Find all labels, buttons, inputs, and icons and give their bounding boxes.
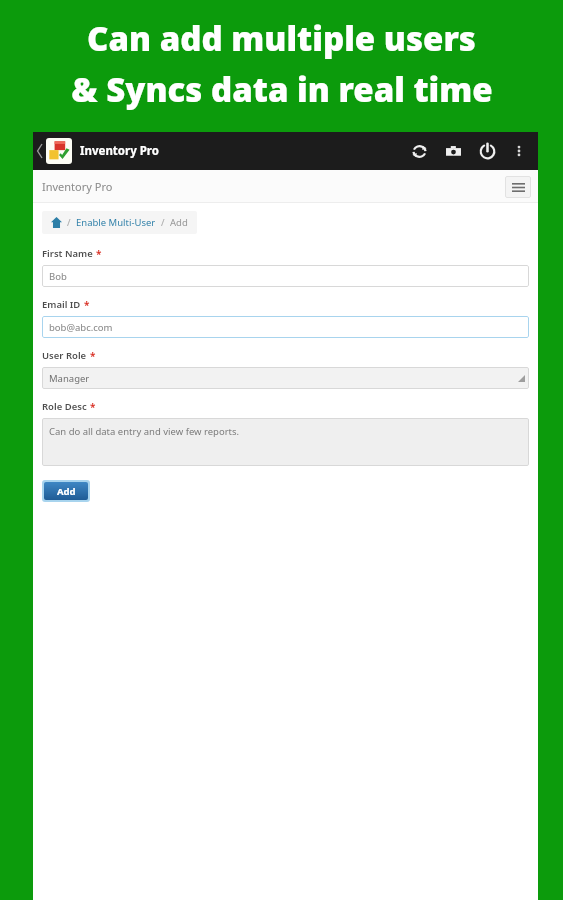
staticText: First Name bbox=[42, 247, 93, 260]
staticText: / bbox=[67, 216, 71, 229]
staticText: User Role bbox=[42, 349, 87, 362]
button[interactable]: Sync bbox=[402, 134, 436, 168]
staticText: Add bbox=[57, 485, 76, 498]
staticText: Can add multiple users bbox=[87, 16, 476, 61]
staticText: Manager bbox=[49, 372, 90, 385]
staticText: bob@abc.com bbox=[49, 321, 113, 334]
button[interactable]: Can do all data entry and view few repor… bbox=[42, 418, 529, 466]
staticText: Role Desc bbox=[42, 400, 87, 413]
button[interactable]: Bob bbox=[42, 265, 529, 287]
staticText: Email ID bbox=[42, 298, 81, 311]
staticText: Enable Multi-User bbox=[76, 216, 156, 229]
staticText: * bbox=[84, 298, 90, 312]
button[interactable]: Power bbox=[470, 134, 504, 168]
staticText: * bbox=[96, 247, 102, 261]
button[interactable]: Add bbox=[44, 482, 88, 500]
staticText: Inventory Pro bbox=[80, 143, 159, 159]
button[interactable]: Inventory Pro bbox=[46, 138, 72, 164]
staticText: / bbox=[161, 216, 165, 229]
button[interactable]: / bbox=[51, 216, 188, 229]
button[interactable]: Manager bbox=[42, 367, 529, 389]
button[interactable]: More options bbox=[504, 136, 534, 166]
staticText: Can do all data entry and view few repor… bbox=[49, 425, 240, 438]
staticText: Inventory Pro bbox=[42, 179, 113, 194]
button[interactable]: Camera bbox=[436, 134, 470, 168]
button[interactable]: bob@abc.com bbox=[42, 316, 529, 338]
staticText: * bbox=[90, 400, 96, 414]
staticText: & Syncs data in real time bbox=[71, 67, 493, 112]
staticText: Bob bbox=[49, 270, 67, 283]
button[interactable]: Menu bbox=[505, 176, 531, 198]
staticText: * bbox=[90, 349, 96, 363]
staticText: Add bbox=[170, 216, 188, 229]
